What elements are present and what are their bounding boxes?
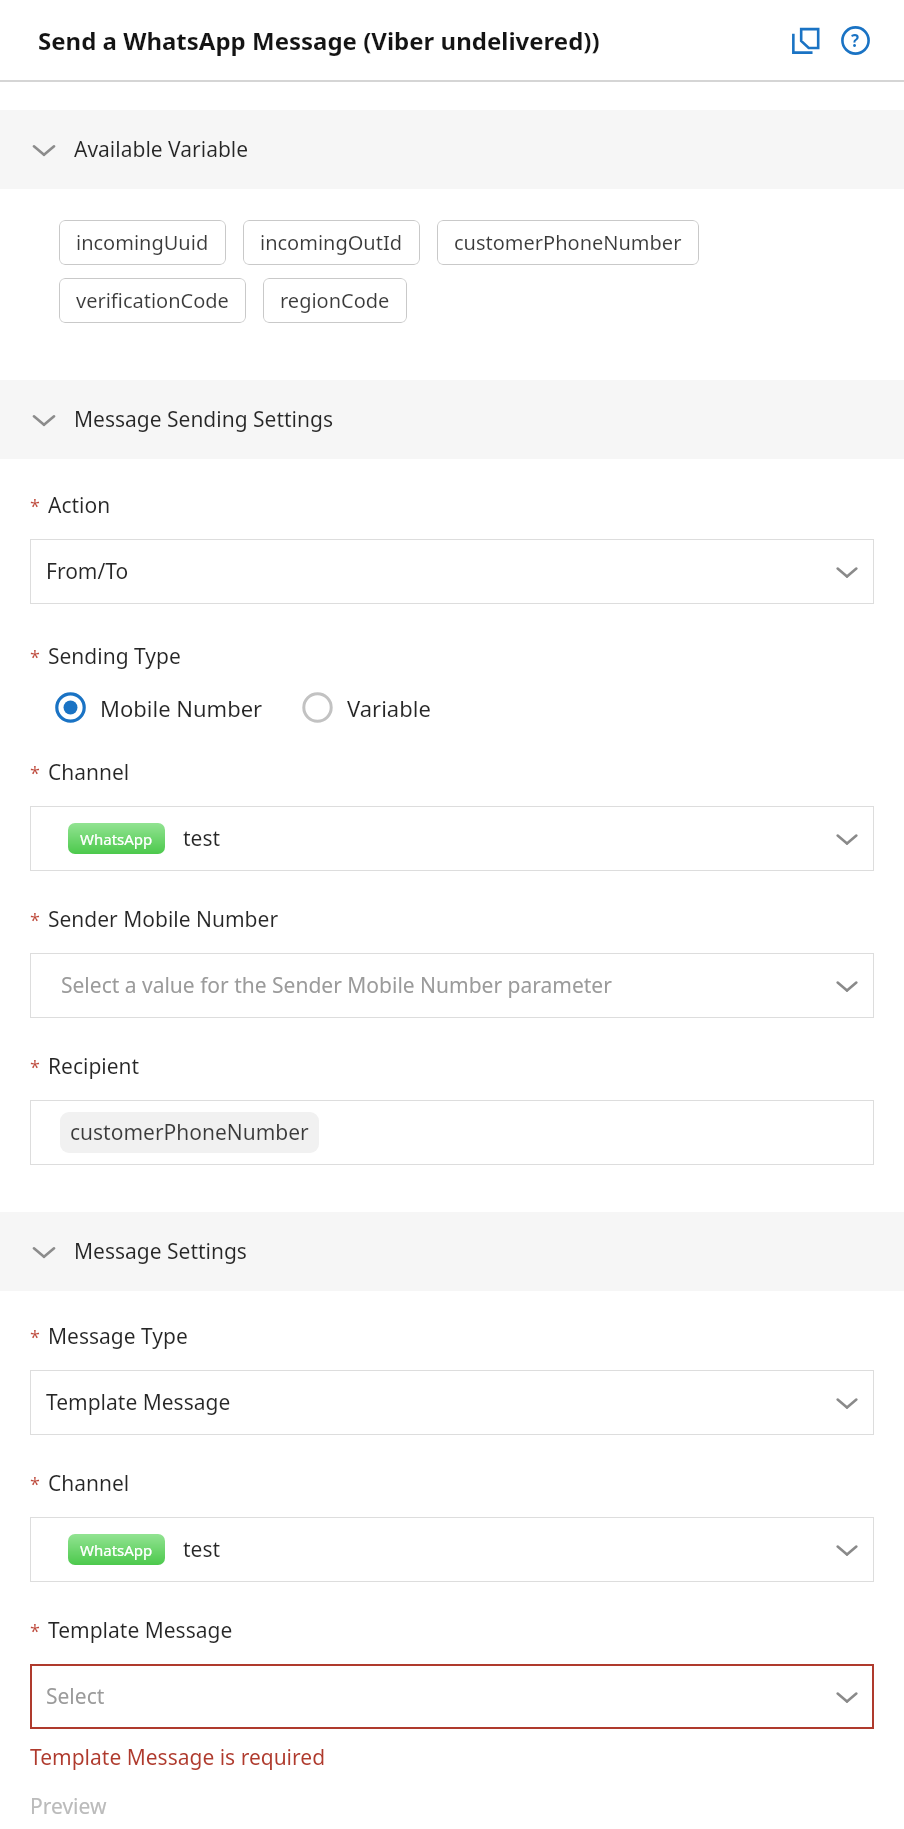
- staticText: Channel: [48, 758, 130, 787]
- staticText: *: [30, 1619, 40, 1644]
- staticText: verificationCode: [76, 287, 229, 314]
- staticText: Action: [48, 491, 111, 520]
- button[interactable]: customerPhoneNumber: [30, 1100, 874, 1165]
- staticText: ?: [851, 29, 860, 52]
- staticText: *: [30, 1055, 40, 1080]
- staticText: test: [183, 1535, 221, 1564]
- staticText: Variable: [347, 693, 431, 723]
- staticText: Sending Type: [48, 642, 181, 671]
- staticText: Preview: [30, 1792, 107, 1821]
- staticText: regionCode: [280, 287, 390, 314]
- button[interactable]: Available Variable: [0, 110, 904, 189]
- staticText: Select a value for the Sender Mobile Num…: [61, 971, 612, 1000]
- staticText: Select: [46, 1682, 105, 1711]
- button[interactable]: Documentation: [782, 17, 828, 63]
- staticText: Recipient: [48, 1052, 140, 1081]
- staticText: From/To: [46, 557, 129, 586]
- staticText: customerPhoneNumber: [70, 1118, 309, 1147]
- staticText: *: [30, 494, 40, 519]
- staticText: Send a WhatsApp Message (Viber undeliver…: [38, 24, 782, 57]
- staticText: Sender Mobile Number: [48, 905, 279, 934]
- staticText: Message Type: [48, 1322, 188, 1351]
- staticText: Message Sending Settings: [74, 405, 333, 434]
- button[interactable]: Message Settings: [0, 1212, 904, 1291]
- button[interactable]: customerPhoneNumber: [437, 220, 699, 265]
- staticText: incomingOutId: [260, 229, 403, 256]
- button[interactable]: Select: [30, 1664, 874, 1729]
- staticText: Channel: [48, 1469, 130, 1498]
- staticText: Mobile Number: [100, 693, 263, 723]
- staticText: *: [30, 645, 40, 670]
- staticText: test: [183, 824, 221, 853]
- button[interactable]: verificationCode: [59, 278, 246, 323]
- button[interactable]: WhatsApp: [30, 1517, 874, 1582]
- staticText: customerPhoneNumber: [454, 229, 682, 256]
- staticText: *: [30, 1472, 40, 1497]
- button[interactable]: Mobile Number: [55, 692, 263, 723]
- button[interactable]: From/To: [30, 539, 874, 604]
- staticText: Message Settings: [74, 1237, 247, 1266]
- staticText: Available Variable: [74, 135, 249, 164]
- staticText: incomingUuid: [76, 229, 209, 256]
- staticText: WhatsApp: [80, 829, 153, 849]
- button[interactable]: regionCode: [263, 278, 407, 323]
- staticText: *: [30, 761, 40, 786]
- button[interactable]: incomingOutId: [243, 220, 420, 265]
- button[interactable]: WhatsApp: [30, 806, 874, 871]
- staticText: Template Message: [46, 1388, 231, 1417]
- staticText: Template Message is required: [30, 1743, 326, 1772]
- button[interactable]: Variable: [302, 692, 431, 723]
- button[interactable]: Message Sending Settings: [0, 380, 904, 459]
- button[interactable]: Template Message: [30, 1370, 874, 1435]
- button[interactable]: Select a value for the Sender Mobile Num…: [30, 953, 874, 1018]
- staticText: Template Message: [48, 1616, 233, 1645]
- staticText: WhatsApp: [80, 1540, 153, 1560]
- button[interactable]: Help: [832, 17, 878, 63]
- staticText: *: [30, 908, 40, 933]
- staticText: *: [30, 1325, 40, 1350]
- button[interactable]: incomingUuid: [59, 220, 226, 265]
